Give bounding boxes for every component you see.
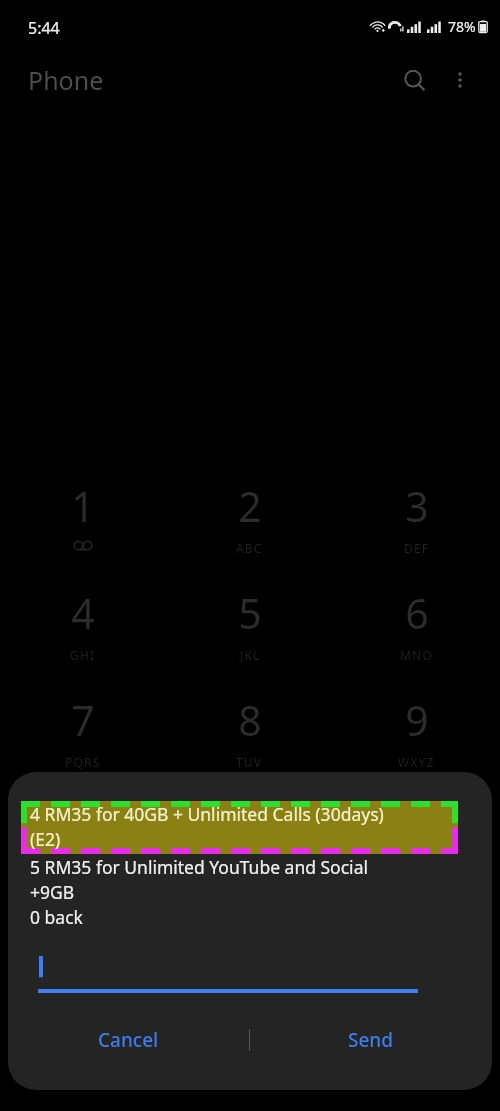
- staticText: Send: [348, 1027, 394, 1053]
- staticText: GHI: [70, 647, 96, 663]
- button[interactable]: 3: [333, 478, 500, 585]
- staticText: 78%: [448, 17, 476, 36]
- staticText: WXYZ: [398, 754, 435, 770]
- button[interactable]: 5: [166, 585, 333, 692]
- button[interactable]: Send: [250, 1012, 492, 1068]
- button[interactable]: 8: [166, 692, 333, 799]
- staticText: MNO: [400, 647, 433, 663]
- button[interactable]: Cancel: [8, 1012, 249, 1068]
- staticText: 5:44: [28, 17, 60, 39]
- staticText: 4: [71, 585, 95, 641]
- staticText: 5 RM35 for Unlimited YouTube and Social …: [30, 855, 368, 929]
- button[interactable]: More options: [436, 56, 484, 104]
- staticText: 6: [405, 585, 429, 641]
- button[interactable]: [38, 950, 478, 994]
- button[interactable]: 2: [166, 478, 333, 585]
- staticText: 9: [405, 692, 429, 748]
- staticText: DEF: [404, 540, 430, 556]
- staticText: 8: [238, 692, 262, 748]
- staticText: TUV: [236, 754, 263, 770]
- staticText: Cancel: [98, 1027, 159, 1053]
- staticText: 5: [238, 585, 262, 641]
- staticText: 2: [238, 478, 262, 534]
- button[interactable]: 6: [333, 585, 500, 692]
- staticText: 4 RM35 for 40GB + Unlimited Calls (30day…: [30, 802, 384, 851]
- staticText: JKL: [240, 647, 261, 663]
- button[interactable]: Search: [390, 56, 438, 104]
- staticText: 7: [71, 692, 95, 748]
- staticText: ABC: [236, 540, 263, 556]
- button[interactable]: 1: [0, 478, 166, 585]
- staticText: Phone: [28, 63, 104, 97]
- button[interactable]: 9: [333, 692, 500, 799]
- staticText: 1: [71, 478, 95, 534]
- button[interactable]: 4: [0, 585, 166, 692]
- button[interactable]: 4 RM35 for 40GB + Unlimited Calls (30day…: [21, 801, 458, 854]
- staticText: 3: [405, 478, 429, 534]
- staticText: PQRS: [65, 754, 101, 770]
- button[interactable]: 7: [0, 692, 166, 799]
